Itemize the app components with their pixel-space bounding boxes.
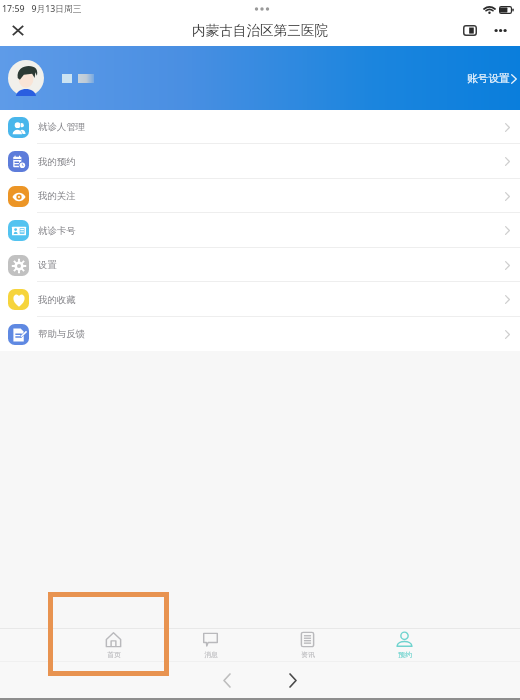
button[interactable]: 就诊人管理 — [0, 110, 520, 144]
staticText: 就诊卡号 — [38, 225, 76, 237]
staticText: 我的关注 — [38, 190, 76, 202]
button[interactable]: 帮助与反馈 — [0, 317, 520, 351]
staticText: 账号设置 — [467, 72, 510, 85]
staticText: 资讯 — [301, 650, 315, 659]
button[interactable]: Split screen — [452, 18, 488, 42]
button[interactable]: 预约 — [356, 628, 453, 661]
button[interactable]: 首页 — [65, 628, 162, 661]
staticText: 消息 — [204, 650, 218, 659]
staticText: 就诊人管理 — [38, 121, 85, 133]
button[interactable]: Close — [0, 16, 36, 44]
button[interactable]: 我的关注 — [0, 179, 520, 213]
button[interactable]: More options — [488, 18, 512, 42]
staticText: 内蒙古自治区第三医院 — [192, 22, 328, 39]
button[interactable]: 就诊卡号 — [0, 213, 520, 248]
button[interactable]: 账号设置 — [463, 66, 517, 91]
button[interactable]: 资讯 — [259, 628, 356, 661]
staticText: 帮助与反馈 — [38, 328, 85, 340]
staticText: 设置 — [38, 259, 57, 271]
staticText: 我的收藏 — [38, 294, 76, 306]
staticText: 17:59 9月13日周三 — [2, 3, 82, 15]
staticText: 我的预约 — [38, 156, 76, 168]
staticText: 首页 — [107, 650, 121, 659]
button[interactable]: 我的收藏 — [0, 282, 520, 317]
button[interactable]: 消息 — [162, 628, 259, 661]
button[interactable]: 设置 — [0, 248, 520, 282]
staticText: 预约 — [398, 650, 412, 659]
button[interactable]: Back — [207, 661, 247, 700]
button[interactable]: Forward — [273, 661, 313, 700]
button[interactable]: 我的预约 — [0, 144, 520, 179]
